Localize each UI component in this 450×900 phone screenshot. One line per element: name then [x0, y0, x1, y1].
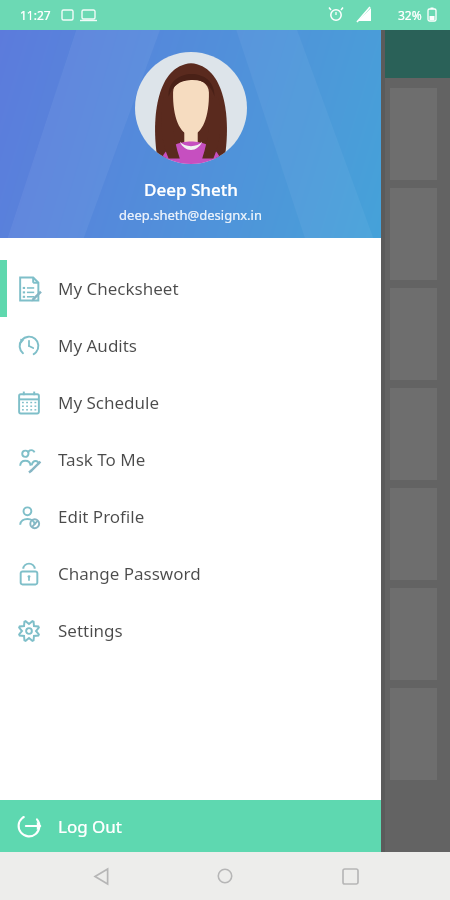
button[interactable]: Home: [201, 852, 249, 900]
staticText: Log Out: [58, 815, 122, 838]
staticText: My Schedule: [58, 391, 160, 414]
button[interactable]: My Schedule: [0, 374, 381, 431]
button[interactable]: Back: [77, 852, 125, 900]
staticText: Task To Me: [58, 448, 146, 471]
staticText: Edit Profile: [58, 505, 145, 528]
staticText: Settings: [58, 619, 123, 642]
staticText: My Checksheet: [58, 277, 179, 300]
button[interactable]: Edit Profile: [0, 488, 381, 545]
button[interactable]: Settings: [0, 602, 381, 659]
staticText: Change Password: [58, 562, 201, 585]
button[interactable]: Recents: [326, 852, 374, 900]
staticText: 32%: [398, 7, 422, 23]
button[interactable]: My Audits: [0, 317, 381, 374]
button[interactable]: Task To Me: [0, 431, 381, 488]
staticText: 11:27: [20, 7, 51, 23]
staticText: My Audits: [58, 334, 137, 357]
button[interactable]: My Checksheet: [0, 260, 381, 317]
staticText: Deep Sheth: [144, 178, 238, 201]
button[interactable]: Change Password: [0, 545, 381, 602]
staticText: deep.sheth@designx.in: [119, 206, 262, 224]
button[interactable]: Log Out: [0, 800, 381, 852]
